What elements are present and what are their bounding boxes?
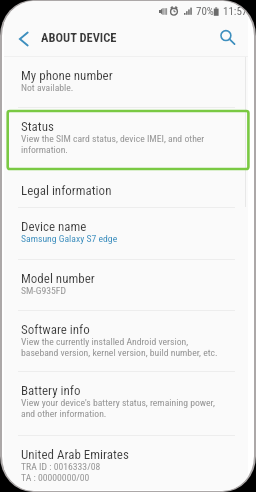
staticText: My phone number <box>21 68 113 83</box>
staticText: Samsung Galaxy S7 edge <box>21 233 118 244</box>
button[interactable]: Device name <box>4 208 254 259</box>
staticText: and other information. <box>21 408 107 419</box>
staticText: Model number <box>21 271 95 286</box>
button[interactable]: Status <box>4 108 254 172</box>
button[interactable]: Battery info <box>4 372 254 435</box>
staticText: Status <box>21 119 54 134</box>
staticText: View the currently installed Android ver… <box>21 336 189 347</box>
staticText: Not available. <box>21 82 74 93</box>
button[interactable]: Software info <box>4 311 254 371</box>
staticText: Device name <box>21 219 87 234</box>
staticText: baseband version, kernel version, build … <box>21 347 218 358</box>
button[interactable]: Model number <box>4 260 254 310</box>
staticText: United Arab Emirates <box>21 447 129 462</box>
staticText: information. <box>21 144 68 155</box>
staticText: View your device's battery status, remai… <box>21 397 215 408</box>
staticText: Battery info <box>21 383 81 398</box>
staticText: Software info <box>21 322 90 337</box>
staticText: TRA ID : 0016333/08 <box>21 461 101 472</box>
staticText: Legal information <box>21 183 112 198</box>
staticText: TA : 00000000/00 <box>21 472 90 483</box>
button[interactable]: My phone number <box>4 57 254 107</box>
button[interactable]: United Arab Emirates <box>4 436 254 491</box>
button[interactable]: Legal information <box>4 172 254 207</box>
staticText: ABOUT DEVICE <box>41 30 117 45</box>
button[interactable]: Search <box>213 23 241 51</box>
staticText: 70% <box>196 5 214 18</box>
staticText: View the SIM card status, device IMEI, a… <box>21 133 205 144</box>
button[interactable]: Navigate up <box>10 25 38 53</box>
staticText: 11:57 <box>223 5 248 18</box>
staticText: SM-G935FD <box>21 285 67 296</box>
